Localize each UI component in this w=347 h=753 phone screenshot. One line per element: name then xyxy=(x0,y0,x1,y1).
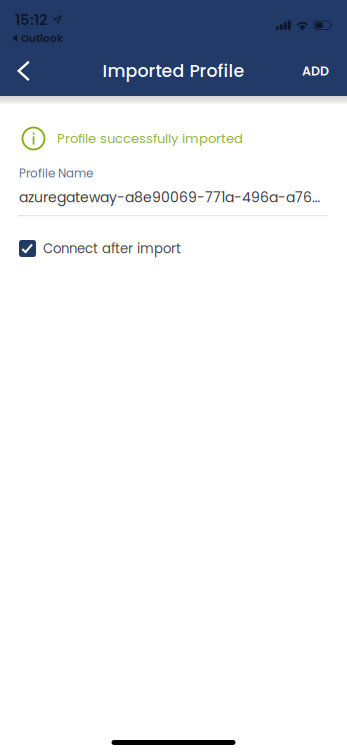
staticText: Outlook xyxy=(21,31,63,46)
button[interactable]: Back xyxy=(0,46,48,96)
button[interactable]: Connect after import xyxy=(0,216,181,258)
staticText: Imported Profile xyxy=(102,59,244,83)
staticText: Profile successfully imported xyxy=(57,129,243,148)
button[interactable]: ADD xyxy=(302,46,347,96)
staticText: azuregateway-a8e90069-771a-496a-a76… xyxy=(19,188,320,207)
staticText: ADD xyxy=(302,62,329,80)
staticText: 15:12 xyxy=(15,9,47,30)
staticText: Connect after import xyxy=(43,239,181,258)
staticText: Profile Name xyxy=(19,165,93,182)
